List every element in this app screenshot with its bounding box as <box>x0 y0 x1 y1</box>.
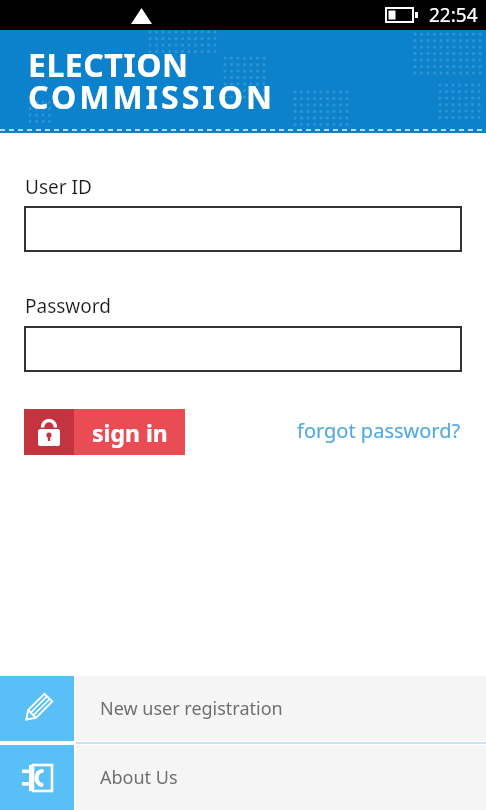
staticText: sign in <box>92 417 168 448</box>
staticText: COMMISSION <box>28 75 276 119</box>
button[interactable]: New user registration <box>0 676 486 741</box>
staticText: About Us <box>100 765 178 790</box>
button[interactable]: sign in <box>24 409 185 455</box>
staticText: ELECTION <box>28 43 189 87</box>
staticText: 22:54 <box>429 2 478 28</box>
button[interactable]: forgot password? <box>297 417 461 444</box>
button[interactable] <box>24 206 462 252</box>
staticText: Password <box>25 293 111 319</box>
staticText: New user registration <box>100 696 283 721</box>
staticText: User ID <box>25 174 92 200</box>
button[interactable] <box>24 326 462 372</box>
button[interactable]: About Us <box>0 745 486 810</box>
